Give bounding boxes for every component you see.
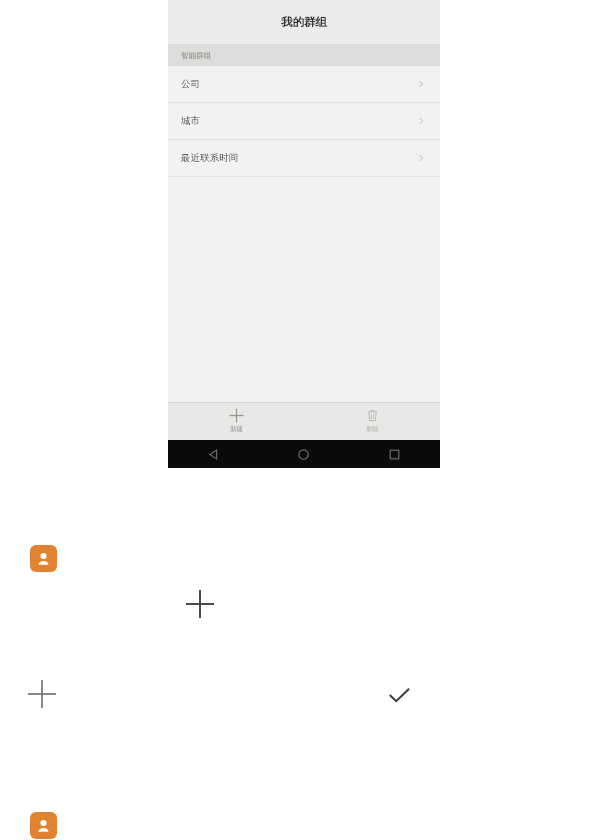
staticText: 公司 xyxy=(181,78,200,90)
staticText: 最近联系时间 xyxy=(181,152,238,164)
button[interactable]: Contacts xyxy=(30,545,57,572)
staticText: 城市 xyxy=(181,115,200,127)
button[interactable]: 最近联系时间 xyxy=(168,140,440,176)
staticText: 删除 xyxy=(366,425,379,433)
button[interactable]: Add xyxy=(28,680,56,708)
button[interactable]: 删除 xyxy=(304,403,440,440)
staticText: 我的群组 xyxy=(281,15,327,29)
button[interactable]: Contacts xyxy=(30,812,57,839)
staticText: 新建 xyxy=(230,425,243,433)
button[interactable]: Home xyxy=(258,440,349,468)
staticText: 智能群组 xyxy=(181,51,211,60)
button[interactable]: Done xyxy=(385,681,413,709)
button[interactable]: 新建 xyxy=(168,403,304,440)
button[interactable]: 城市 xyxy=(168,103,440,139)
button[interactable]: Back xyxy=(168,440,258,468)
button[interactable]: 公司 xyxy=(168,66,440,102)
button[interactable]: Add xyxy=(186,590,214,618)
button[interactable]: Recents xyxy=(349,440,440,468)
